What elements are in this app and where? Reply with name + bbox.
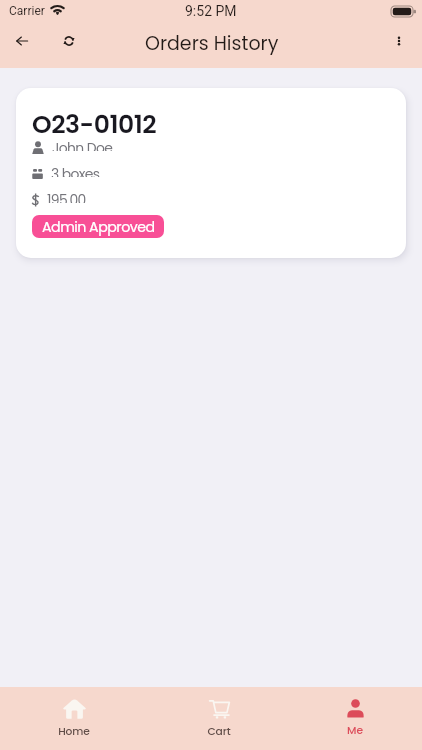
button[interactable]: Admin Approved <box>32 215 164 238</box>
staticText: O23-01012 <box>32 107 157 142</box>
staticText: 195.00 <box>47 190 86 203</box>
staticText: Orders History <box>145 30 279 57</box>
button[interactable]: Cart <box>185 699 253 739</box>
staticText: Home <box>58 724 90 739</box>
button[interactable]: Back <box>0 19 44 63</box>
staticText: Admin Approved <box>42 217 155 237</box>
button[interactable]: Refresh <box>47 19 91 63</box>
button[interactable]: Me <box>321 699 389 738</box>
staticText: John Doe <box>52 138 113 151</box>
staticText: 3 boxes <box>51 164 100 177</box>
button[interactable]: O23-01012 <box>16 88 406 258</box>
button[interactable]: Home <box>40 699 108 739</box>
staticText: 9:52 PM <box>185 3 237 19</box>
button[interactable]: More options <box>377 19 421 63</box>
staticText: Me <box>347 723 363 738</box>
staticText: Cart <box>207 724 231 739</box>
staticText: Carrier <box>9 4 45 18</box>
